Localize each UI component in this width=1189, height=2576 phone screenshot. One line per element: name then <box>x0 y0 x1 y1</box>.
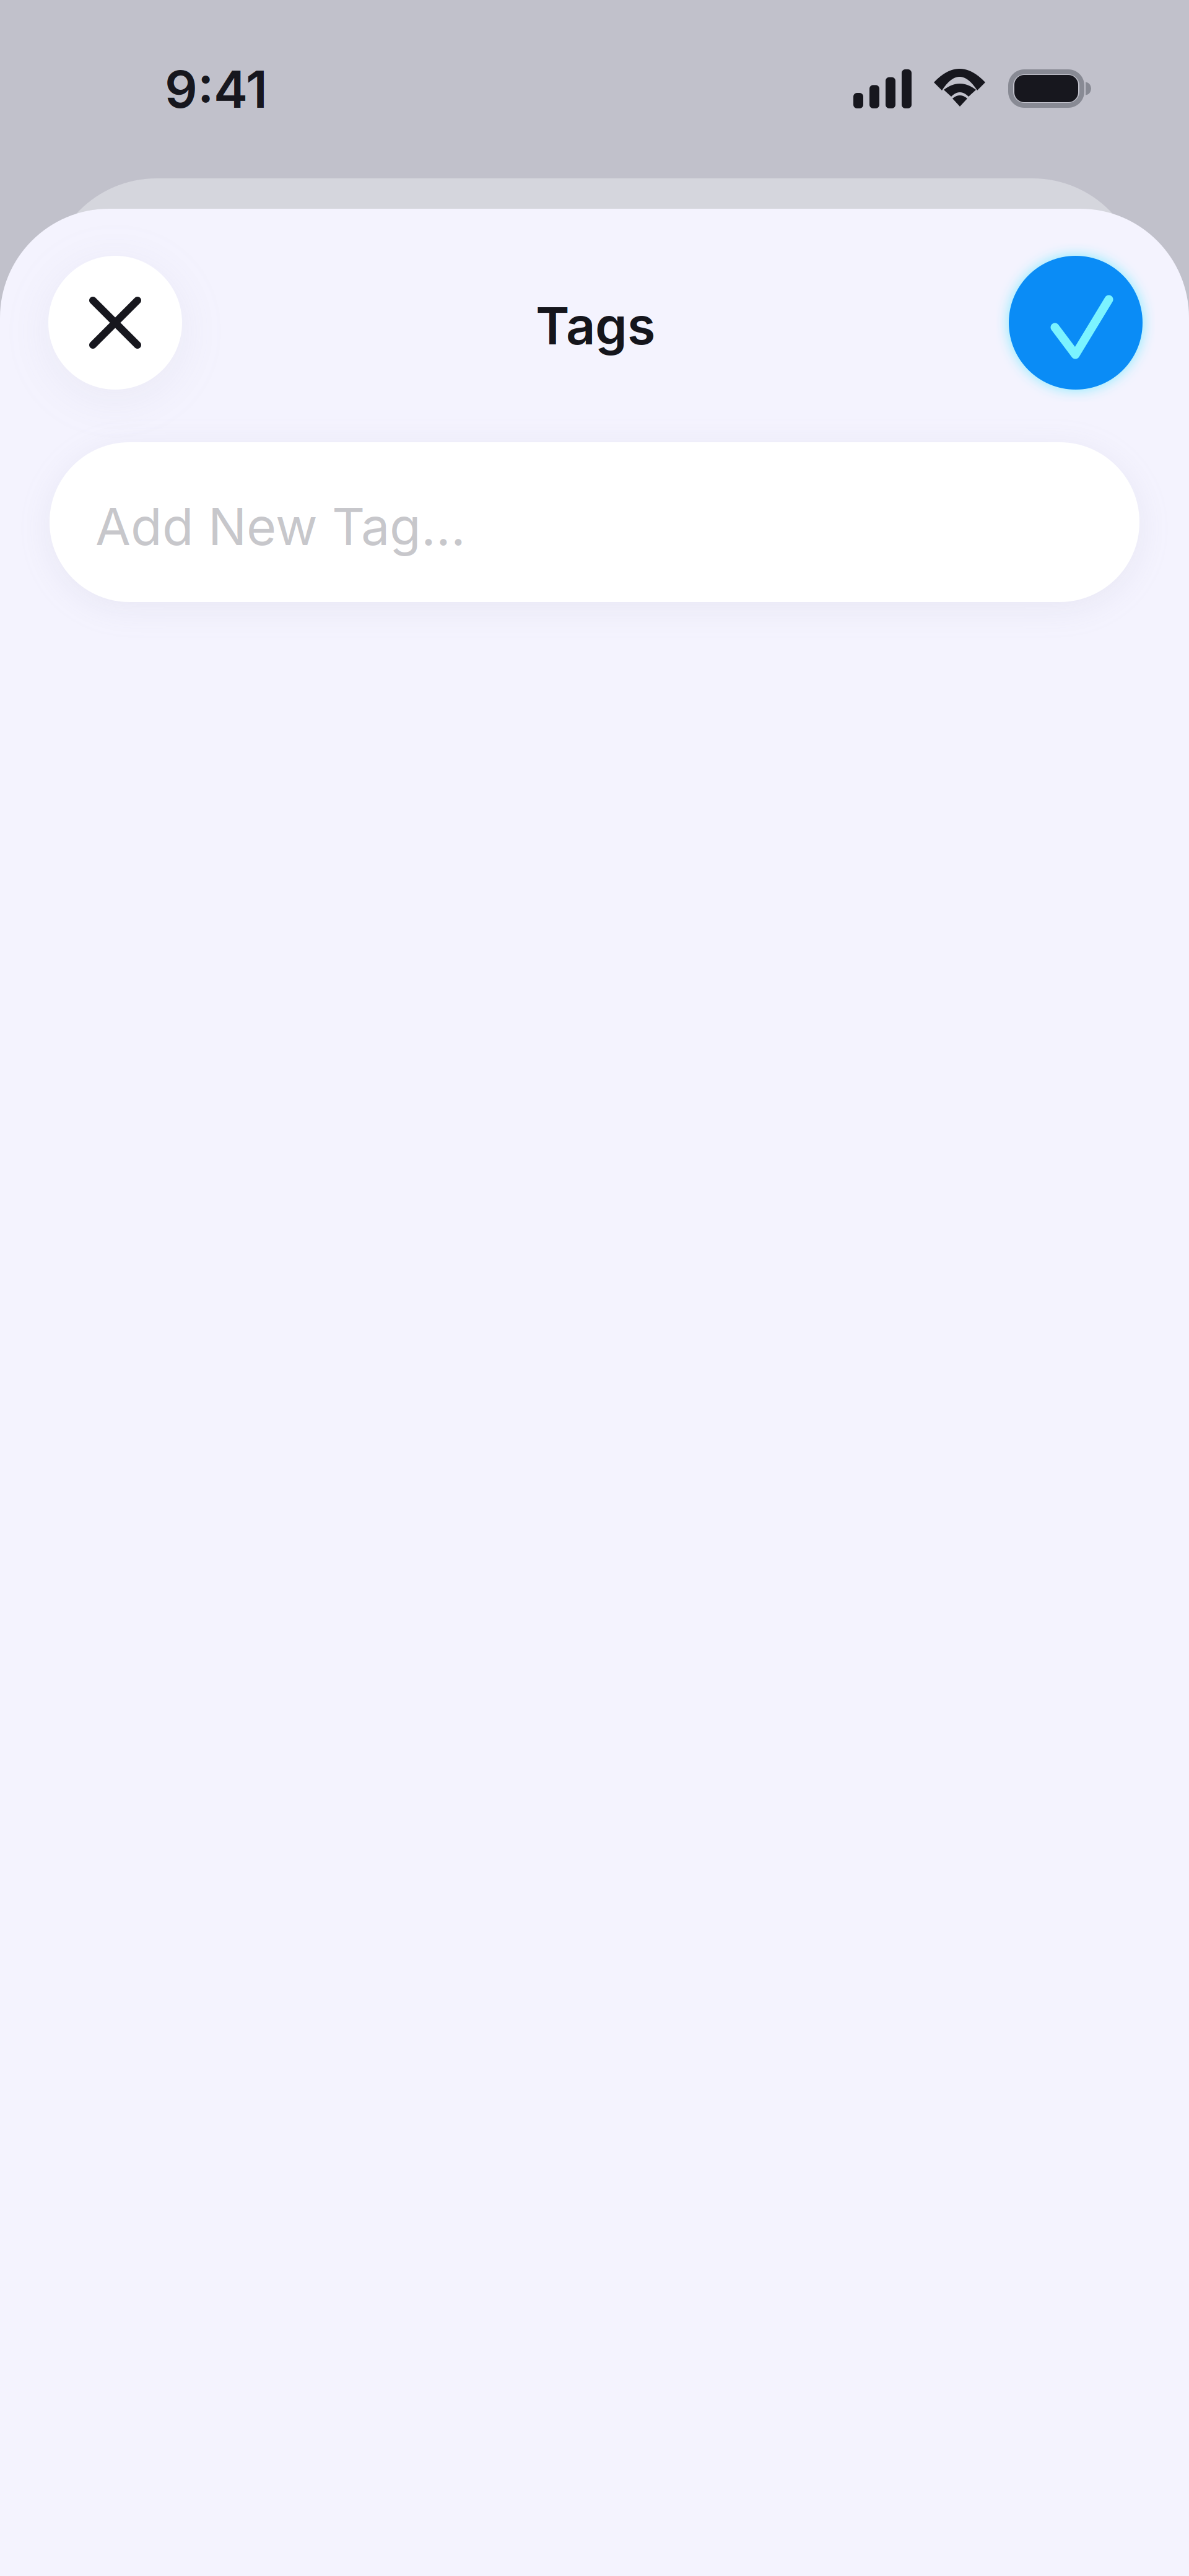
staticText: Add New Tag... <box>95 496 466 557</box>
button[interactable]: Done <box>1009 256 1143 390</box>
staticText: 9:41 <box>165 58 268 120</box>
staticText: Tags <box>536 295 655 357</box>
button[interactable]: Close <box>48 256 182 390</box>
